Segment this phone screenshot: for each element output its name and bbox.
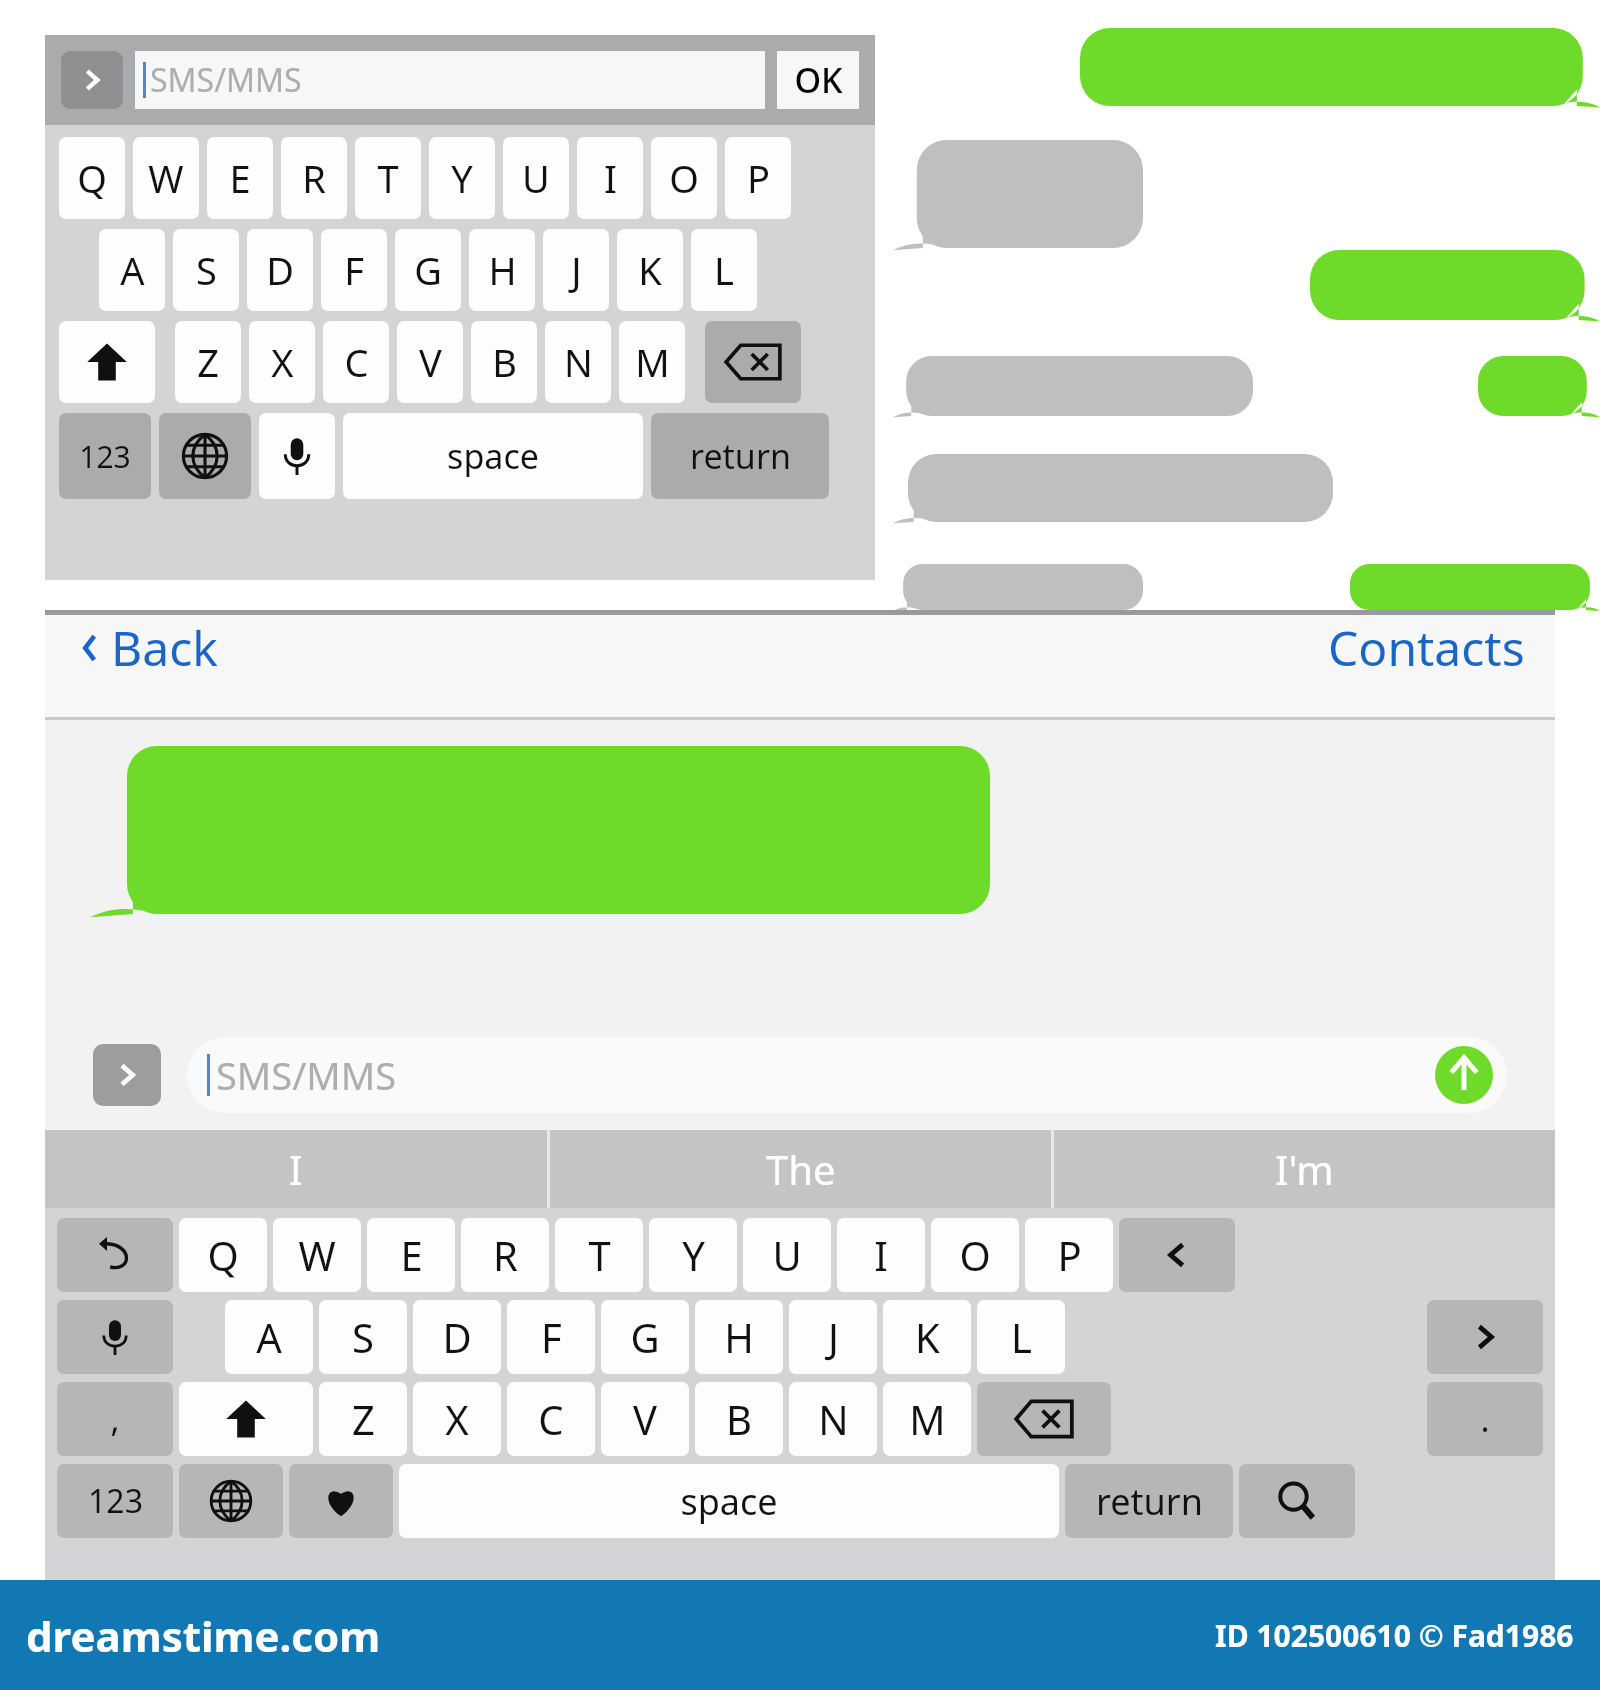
button[interactable]: . [1427, 1382, 1543, 1456]
button[interactable]: Send [1435, 1046, 1493, 1104]
button[interactable]: Emoji [289, 1464, 393, 1538]
button[interactable]: J [789, 1300, 877, 1374]
button[interactable]: Language [159, 413, 251, 499]
button[interactable]: E [367, 1218, 455, 1292]
button[interactable]: , [57, 1382, 173, 1456]
button[interactable]: M [883, 1382, 971, 1456]
button[interactable]: Voice input [259, 413, 335, 499]
button[interactable]: R [281, 137, 347, 219]
button[interactable]: Y [649, 1218, 737, 1292]
staticText: W [298, 1228, 336, 1282]
staticText: N [818, 1392, 849, 1446]
button[interactable]: W [133, 137, 199, 219]
button[interactable]: R [461, 1218, 549, 1292]
button[interactable]: Voice input [57, 1300, 173, 1374]
button[interactable]: N [545, 321, 611, 403]
staticText: O [669, 152, 699, 204]
button[interactable]: return [1065, 1464, 1233, 1538]
button[interactable]: Q [59, 137, 125, 219]
button[interactable]: return [651, 413, 829, 499]
staticText: K [638, 244, 662, 296]
button[interactable]: SMS/MMS [187, 1037, 1507, 1113]
button[interactable]: Left [1119, 1218, 1235, 1292]
button[interactable]: C [507, 1382, 595, 1456]
button[interactable]: G [395, 229, 461, 311]
button[interactable]: I [837, 1218, 925, 1292]
button[interactable]: D [413, 1300, 501, 1374]
button[interactable]: K [883, 1300, 971, 1374]
staticText: K [915, 1310, 940, 1364]
staticText: C [344, 336, 369, 388]
staticText: H [488, 244, 517, 296]
button[interactable]: T [355, 137, 421, 219]
button[interactable]: Language [179, 1464, 283, 1538]
button[interactable]: Z [175, 321, 241, 403]
button[interactable]: N [789, 1382, 877, 1456]
button[interactable]: O [651, 137, 717, 219]
button[interactable]: F [321, 229, 387, 311]
button[interactable]: P [1025, 1218, 1113, 1292]
button[interactable]: W [273, 1218, 361, 1292]
button[interactable]: S [319, 1300, 407, 1374]
button[interactable]: B [471, 321, 537, 403]
button[interactable]: S [173, 229, 239, 311]
staticText: W [148, 152, 184, 204]
button[interactable]: E [207, 137, 273, 219]
button[interactable]: L [977, 1300, 1065, 1374]
button[interactable]: SMS/MMS [135, 51, 765, 109]
button[interactable]: I [45, 1130, 547, 1208]
button[interactable]: H [469, 229, 535, 311]
button[interactable]: V [397, 321, 463, 403]
button[interactable]: U [743, 1218, 831, 1292]
button[interactable]: F [507, 1300, 595, 1374]
button[interactable]: U [503, 137, 569, 219]
button[interactable]: Backspace [705, 321, 801, 403]
button[interactable]: J [543, 229, 609, 311]
button[interactable]: V [601, 1382, 689, 1456]
button[interactable]: G [601, 1300, 689, 1374]
button[interactable]: space [343, 413, 643, 499]
staticText: P [1057, 1228, 1082, 1282]
button[interactable]: I [577, 137, 643, 219]
button[interactable]: X [249, 321, 315, 403]
staticText: S [196, 244, 217, 296]
button[interactable]: Shift [179, 1382, 313, 1456]
button[interactable]: Expand [61, 51, 123, 109]
button[interactable]: P [725, 137, 791, 219]
button[interactable]: OK [777, 51, 859, 109]
button[interactable]: space [399, 1464, 1059, 1538]
button[interactable]: L [691, 229, 757, 311]
button[interactable]: Right [1427, 1300, 1543, 1374]
button[interactable]: Back [75, 615, 218, 680]
staticText: space [447, 433, 539, 479]
button[interactable]: Backspace [977, 1382, 1111, 1456]
staticText: G [630, 1310, 660, 1364]
button[interactable]: T [555, 1218, 643, 1292]
button[interactable]: C [323, 321, 389, 403]
button[interactable]: O [931, 1218, 1019, 1292]
staticText: . [1480, 1396, 1490, 1442]
button[interactable]: Contacts [1328, 615, 1525, 680]
button[interactable]: K [617, 229, 683, 311]
button[interactable]: H [695, 1300, 783, 1374]
button[interactable]: Undo [57, 1218, 173, 1292]
button[interactable]: A [225, 1300, 313, 1374]
button[interactable]: Shift [59, 321, 155, 403]
button[interactable]: M [619, 321, 685, 403]
button[interactable]: The [550, 1130, 1051, 1208]
button[interactable]: A [99, 229, 165, 311]
button[interactable]: 123 [59, 413, 151, 499]
button[interactable]: 123 [57, 1464, 173, 1538]
button[interactable]: X [413, 1382, 501, 1456]
button[interactable]: B [695, 1382, 783, 1456]
staticText: dreamstime.com [26, 1607, 381, 1664]
button[interactable]: Search [1239, 1464, 1355, 1538]
staticText: F [541, 1310, 562, 1364]
staticText: L [1011, 1310, 1032, 1364]
button[interactable]: D [247, 229, 313, 311]
button[interactable]: Expand [93, 1044, 161, 1106]
button[interactable]: Z [319, 1382, 407, 1456]
button[interactable]: Q [179, 1218, 267, 1292]
button[interactable]: I'm [1054, 1130, 1555, 1208]
button[interactable]: Y [429, 137, 495, 219]
